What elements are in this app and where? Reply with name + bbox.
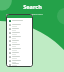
button[interactable] xyxy=(9,51,30,55)
staticText: Find anything fast xyxy=(21,12,43,15)
button[interactable] xyxy=(9,63,30,66)
button[interactable] xyxy=(9,39,30,43)
staticText: Search xyxy=(23,3,42,11)
button[interactable] xyxy=(9,47,30,51)
button[interactable] xyxy=(9,23,30,27)
button[interactable] xyxy=(9,59,30,63)
button[interactable] xyxy=(9,19,30,22)
button[interactable] xyxy=(9,35,30,39)
button[interactable] xyxy=(9,31,30,35)
button[interactable] xyxy=(9,27,30,31)
button[interactable] xyxy=(9,55,30,59)
button[interactable] xyxy=(9,43,30,47)
